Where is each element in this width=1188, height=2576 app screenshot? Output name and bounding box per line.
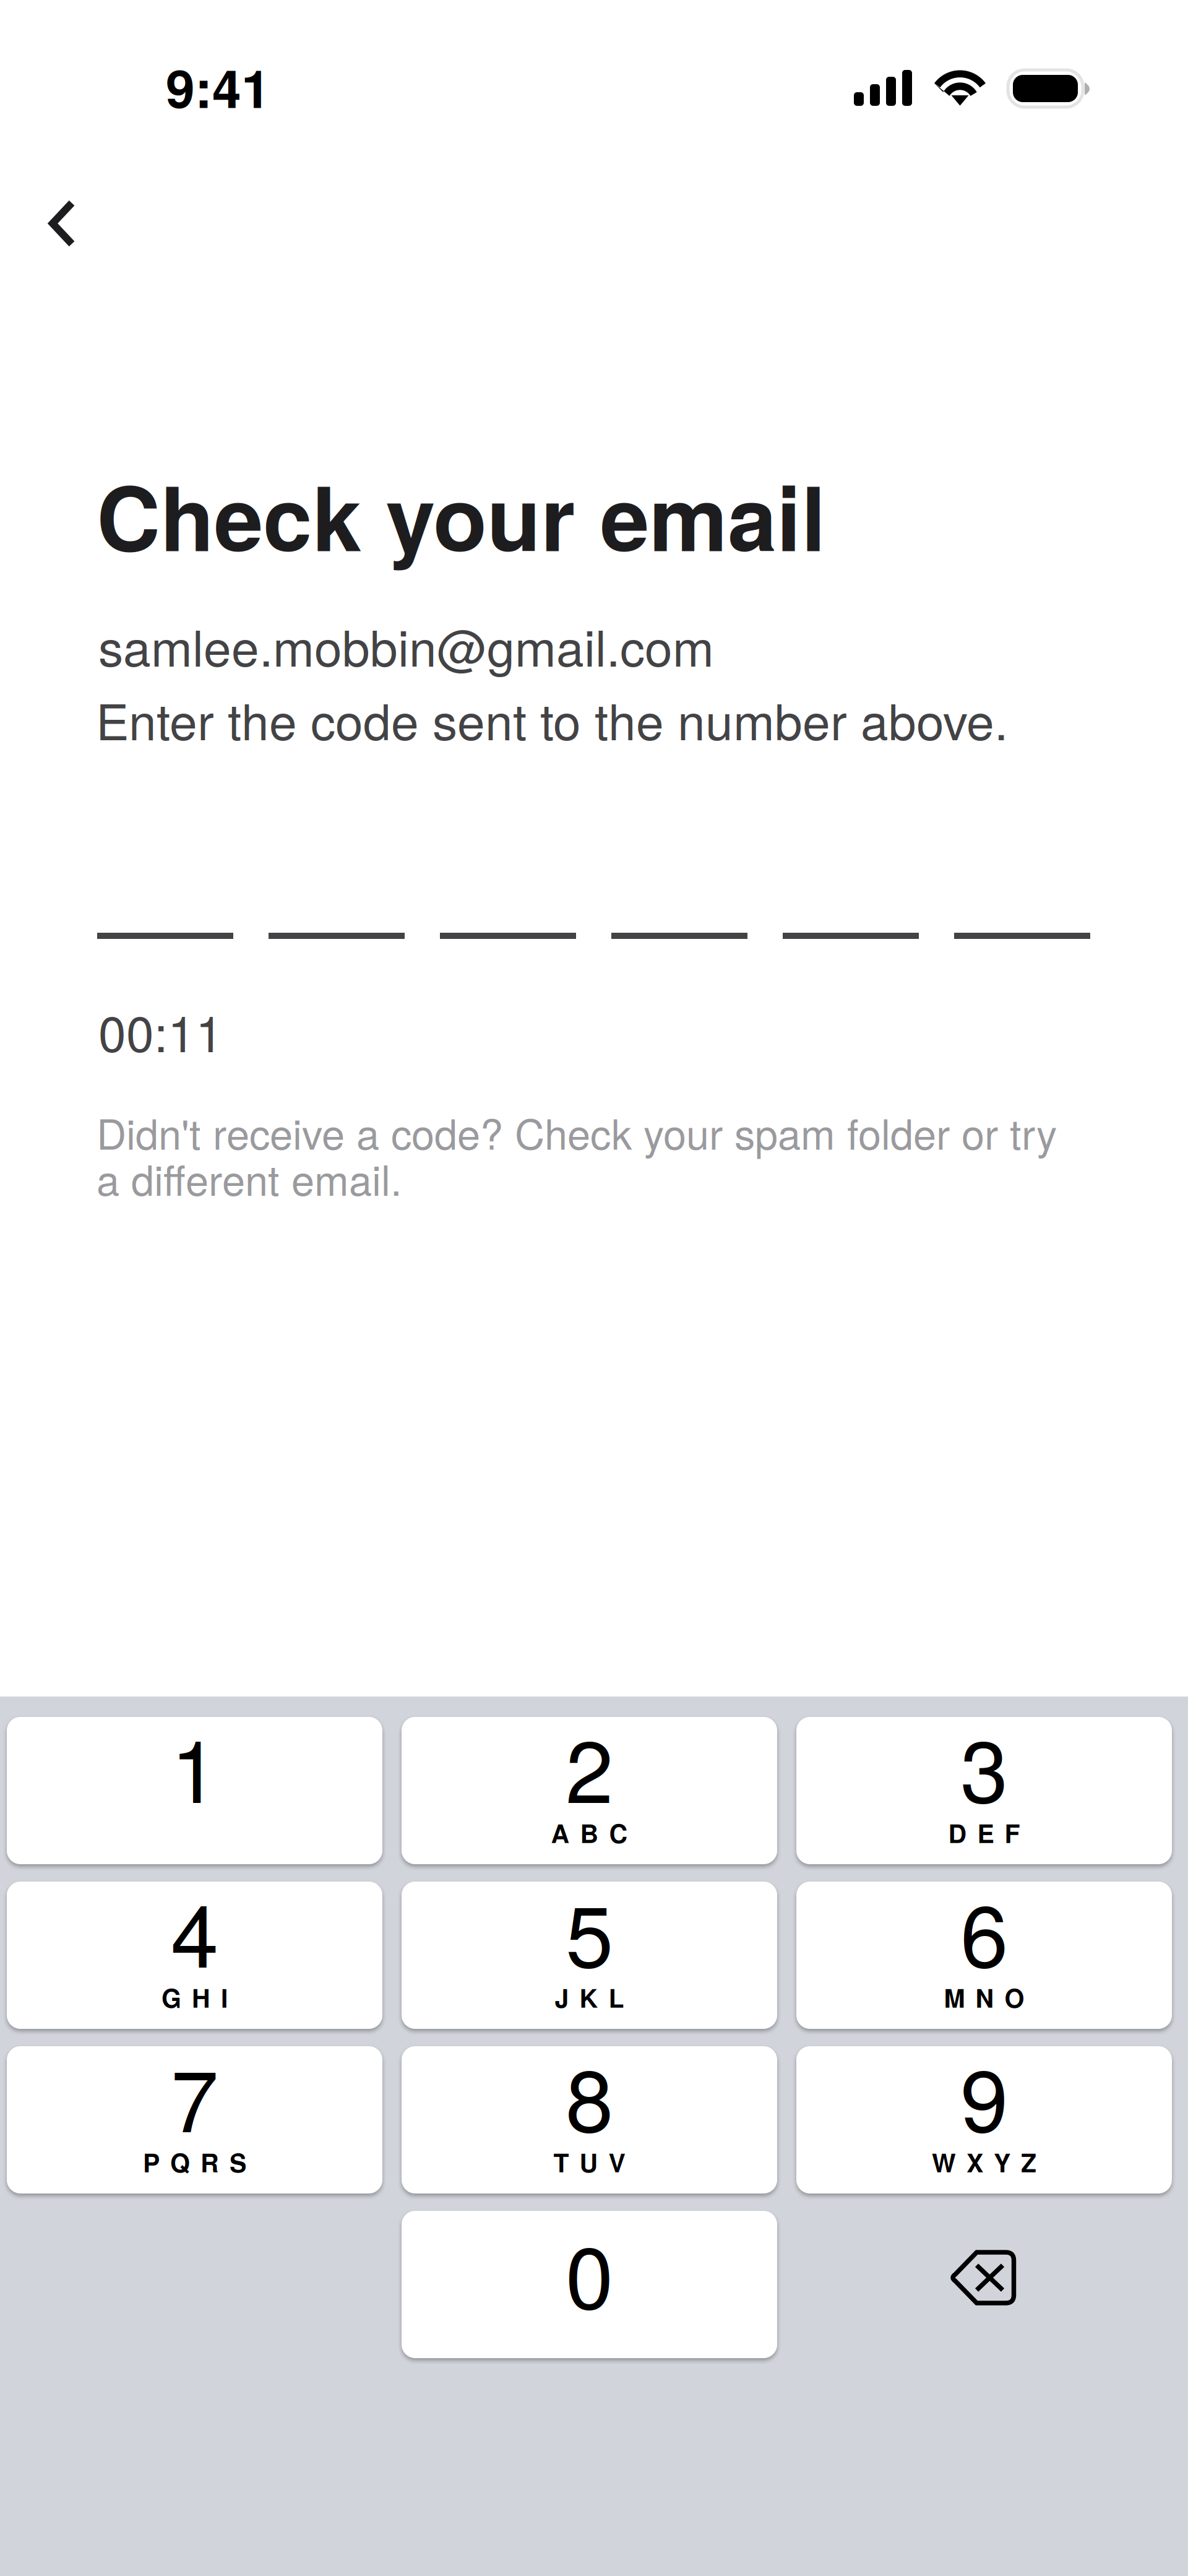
staticText: WXYZ — [932, 2144, 1036, 2180]
staticText: DEF — [948, 1814, 1020, 1851]
button[interactable]: 7 — [7, 2046, 382, 2193]
staticText: 4 — [171, 1869, 218, 1992]
button[interactable]: 3 — [796, 1717, 1172, 1864]
staticText: Check your email — [97, 452, 826, 578]
staticText: 0 — [566, 2211, 613, 2334]
button[interactable]: 5 — [402, 1882, 777, 2029]
staticText: 00:11 — [98, 995, 223, 1066]
staticText: PQRS — [143, 2144, 246, 2180]
staticText: TUV — [553, 2144, 625, 2180]
button[interactable]: 8 — [402, 2046, 777, 2193]
button[interactable]: 9 — [796, 2046, 1172, 2193]
staticText: 6 — [960, 1869, 1008, 1992]
button[interactable]: Back — [0, 178, 100, 269]
staticText: MNO — [944, 1979, 1024, 2015]
staticText: GHI — [161, 1979, 228, 2015]
staticText: 1 — [171, 1704, 218, 1827]
staticText: 9:41 — [166, 50, 270, 124]
button[interactable]: 1 — [7, 1717, 382, 1864]
button[interactable]: 6 — [796, 1882, 1172, 2029]
staticText: Didn't receive a code? Check your spam f… — [97, 1102, 1057, 1208]
staticText: 9 — [960, 2034, 1008, 2157]
staticText: samlee.mobbin@gmail.com — [98, 610, 714, 681]
button[interactable]: Delete — [796, 2211, 1172, 2358]
staticText: 3 — [960, 1704, 1008, 1827]
button[interactable]: 0 — [402, 2211, 777, 2358]
staticText: Enter the code sent to the number above. — [96, 683, 1008, 754]
button[interactable]: 4 — [7, 1882, 382, 2029]
staticText: ABC — [551, 1814, 628, 1851]
button[interactable]: 2 — [402, 1717, 777, 1864]
staticText: JKL — [555, 1979, 624, 2015]
staticText: 8 — [566, 2034, 613, 2157]
staticText: 7 — [171, 2034, 218, 2157]
staticText: 2 — [566, 1704, 613, 1827]
staticText: 5 — [566, 1869, 613, 1992]
